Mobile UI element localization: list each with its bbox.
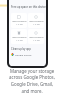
staticText: 1.2 GB xyxy=(33,39,40,42)
button[interactable]: Blurry photos xyxy=(28,29,44,44)
staticText: Clean up by app xyxy=(11,47,31,51)
staticText: Blurry photos xyxy=(12,36,27,39)
staticText: Blurry photos xyxy=(29,36,44,39)
other: Google Photos xyxy=(11,53,14,56)
button[interactable]: Blurry photos xyxy=(11,29,27,44)
button[interactable]: Google Photos xyxy=(11,53,44,56)
button[interactable]: Blurry photos xyxy=(28,13,44,28)
staticText: 1.2 GB xyxy=(33,23,40,26)
staticText: 1.2 GB xyxy=(16,39,23,42)
staticText: Blurry photos xyxy=(29,20,44,23)
button[interactable]: Blurry photos xyxy=(11,13,27,28)
staticText: 1.2 GB xyxy=(16,23,23,26)
staticText: Blurry photos xyxy=(12,20,27,23)
staticText: Free up space on this device xyxy=(11,5,46,9)
staticText: Google Photos xyxy=(15,53,32,56)
staticText: Manage your storage across Google Photos… xyxy=(9,68,55,94)
